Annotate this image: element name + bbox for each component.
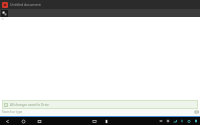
button[interactable]: Back (4, 118, 11, 125)
button[interactable]: Recents (36, 118, 43, 125)
button[interactable]: Input method (91, 118, 98, 125)
button[interactable]: App icon (0, 0, 200, 9)
button[interactable]: Search or type (0, 109, 200, 117)
button[interactable]: Home (20, 118, 27, 125)
staticText: Untitled document (10, 2, 41, 7)
other: App icon (2, 2, 8, 8)
button[interactable]: Keyboard (194, 109, 199, 114)
button[interactable]: Menu (1, 10, 8, 17)
staticText: Search or type (2, 110, 23, 114)
button[interactable]: Notification (103, 118, 110, 125)
staticText: All changes saved in Drive (10, 103, 49, 107)
button[interactable]: All changes saved in Drive (2, 100, 198, 109)
